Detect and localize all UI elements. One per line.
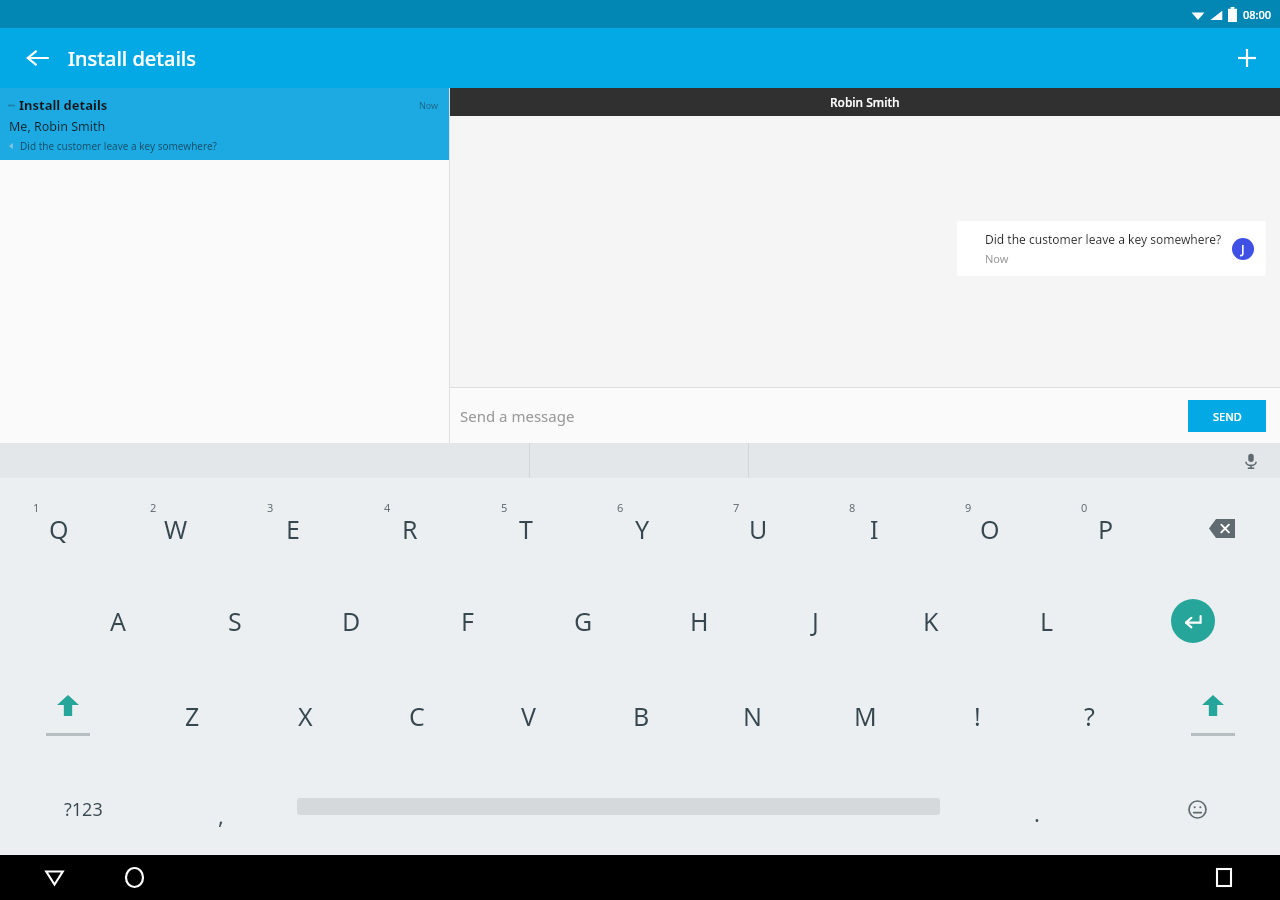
- button[interactable]: C: [361, 668, 473, 763]
- staticText: I: [870, 512, 879, 546]
- button[interactable]: Add: [1224, 35, 1270, 81]
- staticText: V: [521, 699, 537, 733]
- staticText: Robin Smith: [830, 94, 900, 110]
- staticText: 7: [733, 500, 740, 515]
- staticText: 2: [150, 500, 157, 515]
- button[interactable]: !: [921, 668, 1033, 763]
- staticText: C: [409, 699, 425, 733]
- button[interactable]: Z: [136, 668, 249, 763]
- button[interactable]: N: [697, 668, 809, 763]
- staticText: 1: [33, 500, 40, 515]
- button[interactable]: Enter: [1105, 573, 1280, 668]
- staticText: ?123: [64, 797, 103, 822]
- button[interactable]: L: [989, 573, 1105, 668]
- button[interactable]: Voice input: [1236, 446, 1266, 476]
- staticText: S: [228, 604, 242, 638]
- staticText: F: [461, 604, 474, 638]
- staticText: J: [812, 604, 819, 638]
- staticText: 6: [617, 500, 624, 515]
- staticText: O: [980, 512, 1000, 546]
- staticText: ?: [1084, 699, 1095, 733]
- staticText: ,: [218, 800, 224, 830]
- button[interactable]: ?: [1033, 668, 1145, 763]
- staticText: 5: [501, 500, 508, 515]
- staticText: Install details: [68, 45, 196, 72]
- staticText: 4: [384, 500, 391, 515]
- button[interactable]: Back: [30, 855, 78, 900]
- staticText: D: [342, 604, 361, 638]
- staticText: M: [854, 699, 877, 733]
- staticText: Me, Robin Smith: [9, 118, 106, 135]
- staticText: 3: [267, 500, 274, 515]
- button[interactable]: .: [960, 763, 1114, 855]
- staticText: Now: [419, 99, 439, 111]
- button[interactable]: 7: [700, 478, 816, 573]
- button[interactable]: Home: [110, 855, 158, 900]
- staticText: Did the customer leave a key somewhere?: [20, 139, 217, 153]
- staticText: SEND: [1213, 409, 1242, 424]
- button[interactable]: 9: [932, 478, 1048, 573]
- button[interactable]: D: [293, 573, 409, 668]
- button[interactable]: Shift: [1145, 668, 1280, 763]
- staticText: A: [110, 604, 126, 638]
- button[interactable]: ,: [166, 763, 276, 855]
- button[interactable]: K: [873, 573, 989, 668]
- button[interactable]: Did the customer leave a key somewhere?: [957, 221, 1266, 276]
- staticText: R: [402, 512, 418, 546]
- staticText: Now: [985, 251, 1009, 266]
- staticText: G: [574, 604, 593, 638]
- staticText: B: [633, 699, 650, 733]
- staticText: E: [286, 512, 300, 546]
- button[interactable]: V: [473, 668, 585, 763]
- button[interactable]: J: [757, 573, 873, 668]
- staticText: T: [519, 512, 533, 546]
- button[interactable]: ?123: [0, 763, 166, 855]
- staticText: N: [743, 699, 763, 733]
- staticText: Q: [49, 512, 69, 546]
- staticText: Install details: [19, 96, 419, 114]
- button[interactable]: B: [585, 668, 697, 763]
- staticText: Z: [185, 699, 200, 733]
- staticText: H: [690, 604, 709, 638]
- staticText: P: [1098, 512, 1114, 546]
- staticText: Did the customer leave a key somewhere?: [985, 231, 1222, 247]
- button[interactable]: Install details: [0, 88, 449, 160]
- button[interactable]: X: [249, 668, 361, 763]
- staticText: 9: [965, 500, 972, 515]
- button[interactable]: Emoji: [1114, 763, 1280, 855]
- button[interactable]: 1: [0, 478, 117, 573]
- button[interactable]: 0: [1048, 478, 1164, 573]
- staticText: U: [749, 512, 768, 546]
- staticText: K: [923, 604, 939, 638]
- button[interactable]: 6: [584, 478, 700, 573]
- button[interactable]: S: [176, 573, 293, 668]
- button[interactable]: Recents: [1200, 855, 1248, 900]
- button[interactable]: A: [59, 573, 176, 668]
- button[interactable]: Shift: [0, 668, 136, 763]
- button[interactable]: H: [641, 573, 757, 668]
- button[interactable]: M: [809, 668, 921, 763]
- staticText: J: [1241, 241, 1245, 257]
- button[interactable]: Backspace: [1164, 478, 1280, 573]
- staticText: X: [298, 699, 313, 733]
- button[interactable]: 5: [468, 478, 584, 573]
- button[interactable]: G: [525, 573, 641, 668]
- button[interactable]: 4: [351, 478, 468, 573]
- button[interactable]: Space: [276, 763, 960, 855]
- staticText: 08:00: [1243, 7, 1272, 22]
- staticText: L: [1040, 604, 1054, 638]
- staticText: W: [164, 512, 188, 546]
- button[interactable]: 8: [816, 478, 932, 573]
- button[interactable]: Back: [14, 35, 60, 81]
- staticText: !: [974, 699, 981, 733]
- staticText: .: [1034, 798, 1040, 828]
- staticText: Y: [635, 512, 650, 546]
- button[interactable]: 2: [117, 478, 234, 573]
- button[interactable]: 3: [234, 478, 351, 573]
- staticText: 8: [849, 500, 856, 515]
- button[interactable]: F: [409, 573, 525, 668]
- button[interactable]: SEND: [1188, 400, 1266, 432]
- staticText: Send a message: [460, 406, 575, 426]
- staticText: 0: [1081, 500, 1088, 515]
